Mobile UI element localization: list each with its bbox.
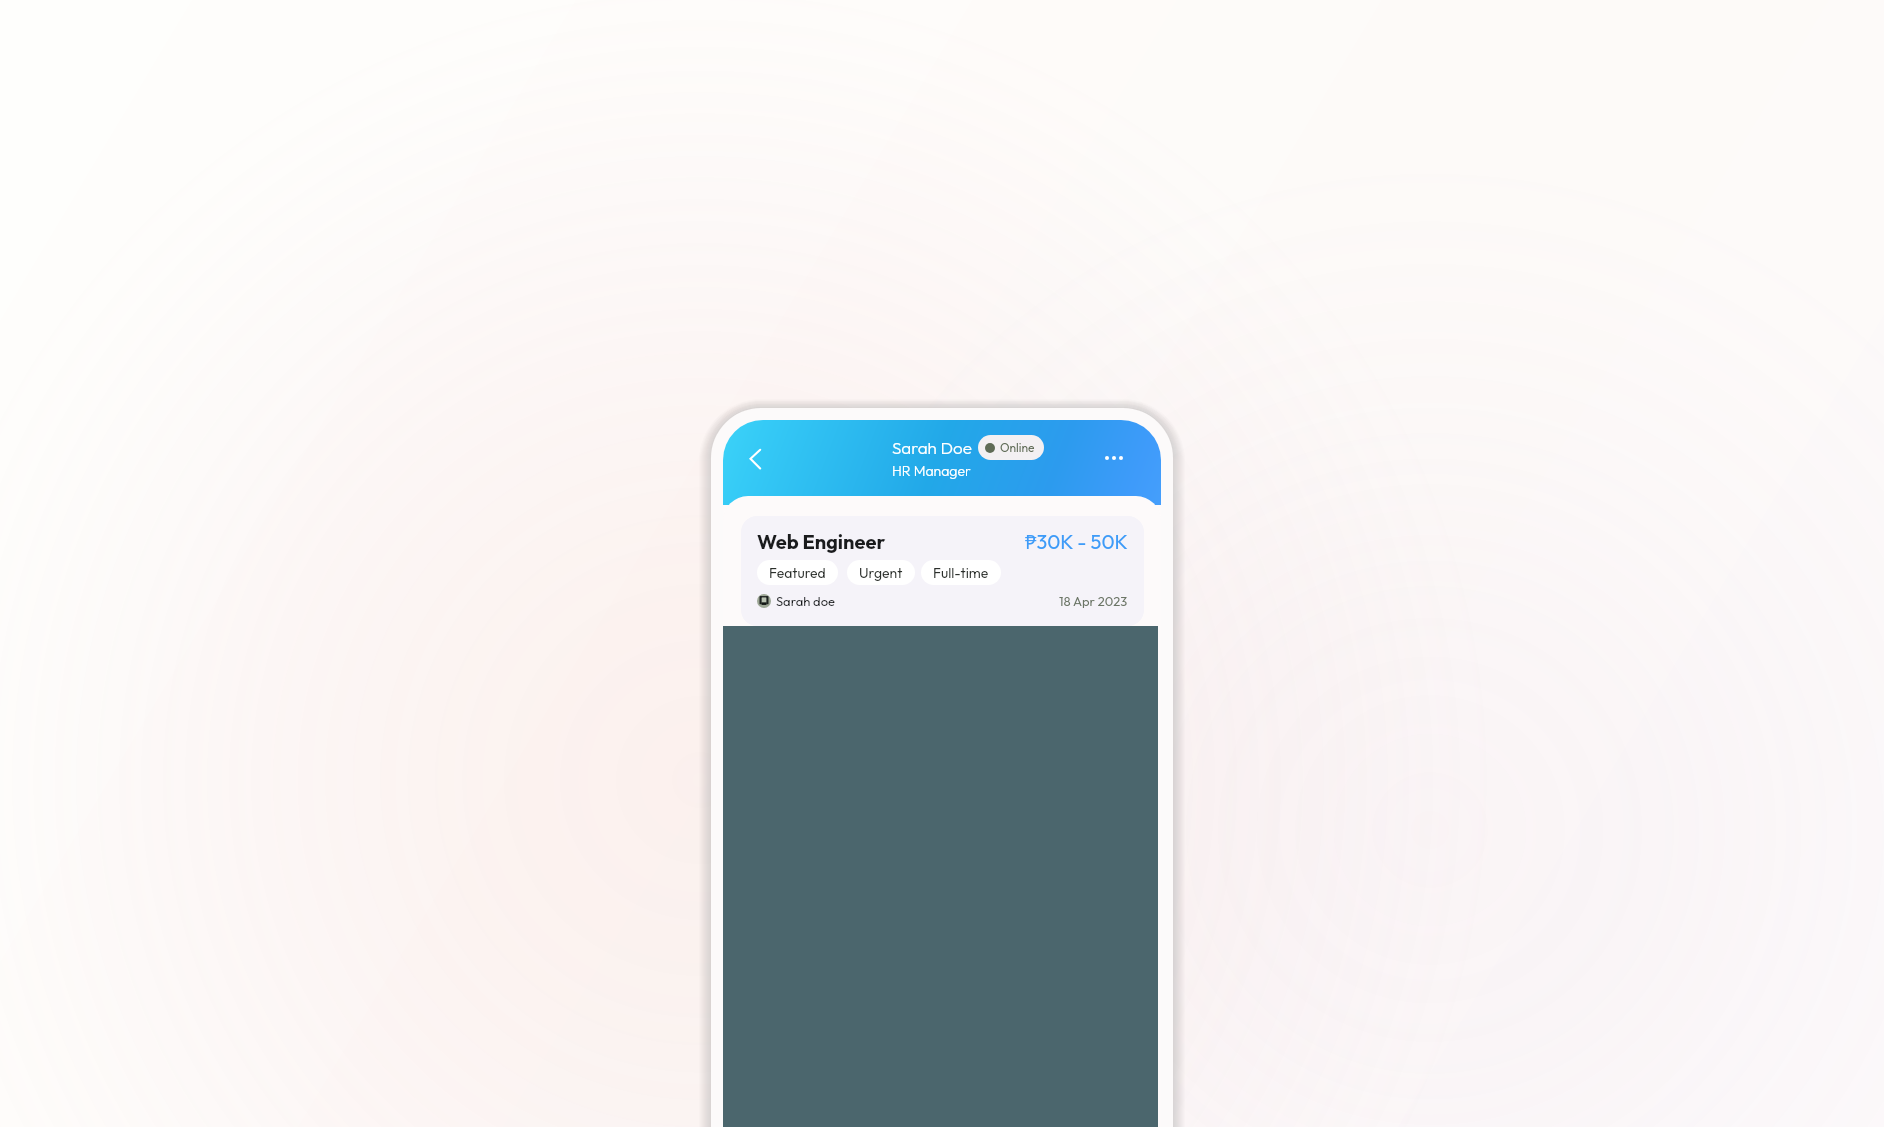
button[interactable]: More options [1099,447,1129,469]
staticText: Featured [769,564,826,582]
staticText: ₱30K - 50K [1025,528,1128,555]
staticText: Web Engineer [757,529,886,554]
staticText: 18 Apr 2023 [1059,593,1128,609]
staticText: Sarah doe [776,593,835,609]
staticText: Full-time [933,564,989,582]
button[interactable]: Featured [757,560,838,585]
button[interactable]: Online [978,435,1044,460]
button[interactable]: Urgent [847,560,915,585]
staticText: HR Manager [892,462,971,480]
button[interactable]: Full-time [921,560,1001,585]
staticText: Sarah Doe [892,437,972,458]
staticText: Urgent [859,564,903,582]
button[interactable]: Back [735,443,767,475]
staticText: Online [1000,440,1035,455]
button[interactable]: Web Engineer [741,516,1144,626]
